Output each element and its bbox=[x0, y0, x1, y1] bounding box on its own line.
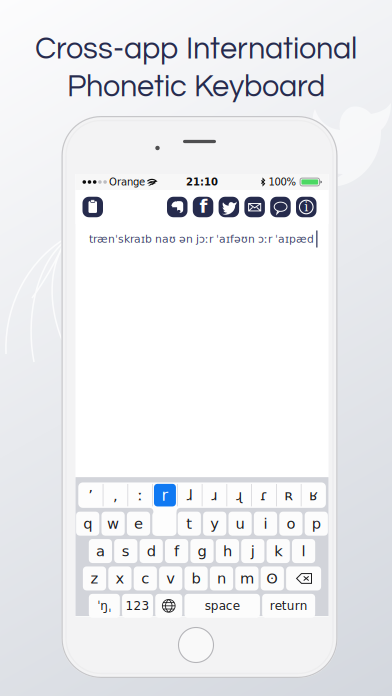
button[interactable]: ʁ bbox=[301, 482, 326, 508]
staticText: w bbox=[107, 515, 119, 532]
staticText: r bbox=[161, 486, 168, 504]
button[interactable]: ˈŋˌ bbox=[89, 594, 120, 618]
staticText: y bbox=[210, 515, 219, 532]
staticText: j bbox=[251, 542, 255, 560]
staticText: e bbox=[134, 515, 143, 532]
button[interactable]: ɾ bbox=[252, 482, 276, 508]
staticText: q bbox=[83, 515, 92, 532]
staticText: x bbox=[115, 570, 124, 587]
button[interactable]: y bbox=[203, 512, 226, 536]
staticText: f bbox=[174, 542, 179, 560]
staticText: h bbox=[223, 542, 232, 560]
button[interactable]: Delete bbox=[286, 566, 321, 590]
button[interactable]: ʼ bbox=[78, 482, 103, 508]
staticText: d bbox=[147, 542, 156, 560]
staticText: ʀ bbox=[284, 487, 293, 504]
button[interactable]: w bbox=[101, 512, 125, 536]
button[interactable]: Switch keyboard bbox=[155, 594, 182, 618]
button[interactable]: u bbox=[228, 512, 252, 536]
button[interactable]: r bbox=[153, 482, 177, 508]
staticText: ɻ bbox=[236, 487, 242, 504]
staticText: f bbox=[199, 196, 207, 217]
button[interactable]: n bbox=[210, 566, 233, 590]
button[interactable]: g bbox=[190, 539, 214, 563]
button[interactable]: d bbox=[140, 539, 163, 563]
button[interactable]: 123 bbox=[122, 594, 153, 618]
staticText: i bbox=[263, 515, 267, 532]
button[interactable]: Send to Evernote bbox=[167, 197, 187, 217]
button[interactable]: l bbox=[292, 539, 315, 563]
button[interactable]: f bbox=[165, 539, 188, 563]
button[interactable]: h bbox=[216, 539, 239, 563]
staticText: trænˈskraɪb naʊ ən jɔːr ˈaɪfəʊn ɔːr ˈaɪp… bbox=[89, 233, 314, 245]
staticText: ʁ bbox=[309, 487, 318, 504]
button[interactable]: a bbox=[89, 539, 112, 563]
staticText: g bbox=[197, 542, 206, 560]
button[interactable]: z bbox=[83, 566, 106, 590]
staticText: Phonetic Keyboard bbox=[67, 71, 325, 103]
staticText: z bbox=[90, 570, 98, 587]
staticText: ʘ bbox=[266, 570, 278, 587]
staticText: ɹ bbox=[211, 487, 217, 504]
button[interactable]: i bbox=[254, 512, 277, 536]
staticText: ɺ bbox=[187, 487, 193, 504]
button[interactable]: t bbox=[178, 512, 201, 536]
staticText: l bbox=[302, 542, 306, 560]
staticText: o bbox=[286, 515, 295, 532]
button[interactable]: ː bbox=[128, 482, 153, 508]
button[interactable]: o bbox=[279, 512, 302, 536]
staticText: 100% bbox=[268, 176, 296, 188]
staticText: return bbox=[270, 599, 308, 613]
staticText: 123 bbox=[125, 599, 149, 613]
button[interactable] bbox=[152, 512, 175, 536]
staticText: i bbox=[304, 199, 308, 214]
button[interactable]: ɻ bbox=[227, 482, 252, 508]
button[interactable]: Send as message bbox=[270, 197, 291, 217]
staticText: c bbox=[141, 570, 149, 587]
button[interactable]: space bbox=[184, 594, 260, 618]
button[interactable]: About this app bbox=[296, 197, 316, 217]
button[interactable]: , bbox=[103, 482, 128, 508]
staticText: , bbox=[113, 487, 118, 504]
staticText: m bbox=[240, 570, 254, 587]
button[interactable]: return bbox=[262, 594, 315, 618]
button[interactable]: ɺ bbox=[177, 482, 202, 508]
staticText: a bbox=[96, 542, 105, 560]
staticText: Cross-app International bbox=[35, 33, 357, 65]
staticText: b bbox=[192, 570, 201, 587]
button[interactable]: s bbox=[114, 539, 137, 563]
button[interactable]: ʘ bbox=[261, 566, 284, 590]
button[interactable]: b bbox=[184, 566, 208, 590]
button[interactable]: k bbox=[267, 539, 290, 563]
button[interactable]: j bbox=[241, 539, 264, 563]
button[interactable]: p bbox=[305, 512, 328, 536]
button[interactable]: m bbox=[235, 566, 258, 590]
button[interactable]: ɹ bbox=[202, 482, 227, 508]
button[interactable]: Share on Facebook bbox=[193, 197, 213, 217]
staticText: u bbox=[236, 515, 245, 532]
button[interactable]: Paste from clipboard bbox=[82, 197, 103, 217]
staticText: n bbox=[217, 570, 226, 587]
staticText: space bbox=[205, 599, 240, 613]
staticText: ɾ bbox=[260, 487, 268, 504]
button[interactable]: q bbox=[76, 512, 99, 536]
button[interactable]: x bbox=[108, 566, 131, 590]
staticText: k bbox=[274, 542, 282, 560]
staticText: 21:10 bbox=[186, 176, 218, 188]
staticText: Orange bbox=[109, 176, 145, 188]
staticText: v bbox=[166, 570, 175, 587]
staticText: ː bbox=[138, 487, 143, 504]
button[interactable]: c bbox=[134, 566, 157, 590]
staticText: t bbox=[186, 515, 192, 532]
staticText: p bbox=[312, 515, 321, 532]
button[interactable]: Send by email bbox=[244, 197, 265, 217]
staticText: s bbox=[122, 542, 130, 560]
button[interactable]: e bbox=[127, 512, 150, 536]
button[interactable]: ʀ bbox=[276, 482, 301, 508]
button[interactable]: v bbox=[159, 566, 182, 590]
button[interactable]: Share on Twitter bbox=[219, 197, 239, 217]
staticText: ʼ bbox=[88, 487, 93, 504]
staticText: ˈŋˌ bbox=[97, 599, 111, 613]
